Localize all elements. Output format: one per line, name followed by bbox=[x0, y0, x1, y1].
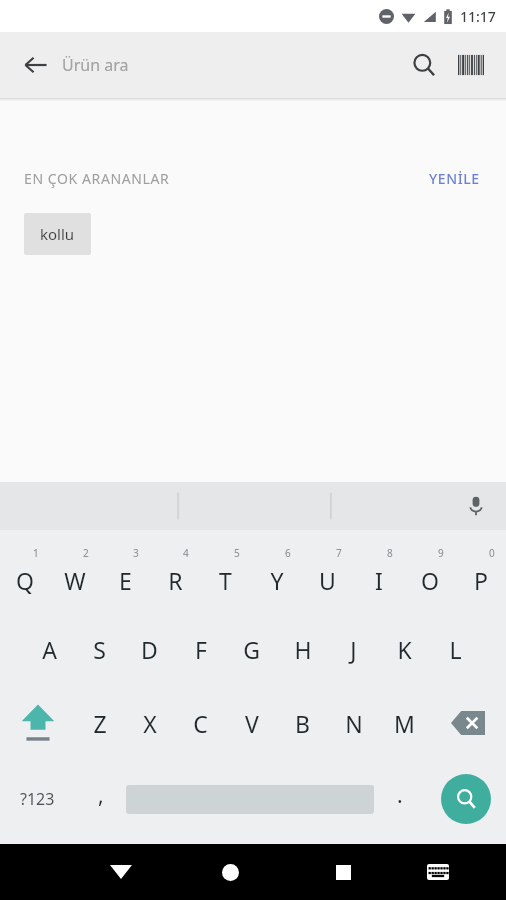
button[interactable]: Search bbox=[400, 41, 448, 89]
button[interactable]: Switch keyboard bbox=[394, 844, 481, 900]
staticText: , bbox=[98, 781, 104, 810]
button[interactable]: B bbox=[277, 686, 328, 760]
staticText: N bbox=[345, 708, 363, 739]
button[interactable]: YENİLE bbox=[423, 165, 486, 192]
staticText: H bbox=[294, 634, 312, 665]
button[interactable]: Ürün ara bbox=[58, 32, 400, 98]
button[interactable]: N bbox=[328, 686, 379, 760]
staticText: 6 bbox=[285, 546, 291, 560]
staticText: X bbox=[143, 708, 157, 739]
staticText: kollu bbox=[40, 224, 75, 244]
staticText: 11:17 bbox=[460, 7, 496, 26]
staticText: . bbox=[397, 781, 403, 810]
staticText: A bbox=[42, 634, 57, 665]
button[interactable]: T bbox=[200, 538, 251, 612]
button[interactable]: kollu bbox=[24, 213, 91, 255]
staticText: YENİLE bbox=[429, 169, 480, 188]
staticText: 7 bbox=[336, 546, 342, 560]
button[interactable]: G bbox=[226, 612, 277, 686]
staticText: EN ÇOK ARANANLAR bbox=[24, 169, 170, 188]
staticText: 9 bbox=[438, 546, 444, 560]
staticText: F bbox=[195, 634, 207, 665]
button[interactable]: L bbox=[430, 612, 481, 686]
button[interactable]: Y bbox=[251, 538, 302, 612]
button[interactable]: Hide keyboard bbox=[73, 844, 168, 900]
button[interactable]: Z bbox=[75, 686, 125, 760]
button[interactable]: E bbox=[100, 538, 150, 612]
staticText: Q bbox=[16, 565, 34, 596]
button[interactable]: Backspace bbox=[430, 686, 506, 760]
button[interactable]: W bbox=[50, 538, 100, 612]
button[interactable]: V bbox=[226, 686, 277, 760]
staticText: Z bbox=[93, 708, 107, 739]
button[interactable]: C bbox=[175, 686, 226, 760]
button[interactable]: Q bbox=[0, 538, 50, 612]
button[interactable]: Space bbox=[126, 760, 374, 838]
staticText: G bbox=[243, 634, 260, 665]
button[interactable]: K bbox=[379, 612, 430, 686]
staticText: 3 bbox=[133, 546, 139, 560]
staticText: D bbox=[141, 634, 158, 665]
staticText: 4 bbox=[183, 546, 189, 560]
staticText: Ürün ara bbox=[62, 54, 129, 76]
button[interactable]: R bbox=[150, 538, 200, 612]
button[interactable]: H bbox=[277, 612, 328, 686]
button[interactable]: . bbox=[374, 760, 425, 838]
button[interactable]: Back bbox=[14, 43, 58, 87]
staticText: M bbox=[394, 708, 415, 739]
button[interactable]: F bbox=[175, 612, 226, 686]
button[interactable]: A bbox=[24, 612, 74, 686]
staticText: S bbox=[93, 634, 106, 665]
staticText: C bbox=[193, 708, 208, 739]
staticText: O bbox=[421, 565, 439, 596]
button[interactable]: , bbox=[75, 760, 126, 838]
staticText: U bbox=[319, 565, 336, 596]
staticText: T bbox=[219, 565, 232, 596]
staticText: W bbox=[64, 565, 86, 596]
button[interactable]: M bbox=[379, 686, 430, 760]
button[interactable]: O bbox=[404, 538, 455, 612]
button[interactable]: Search bbox=[425, 760, 506, 838]
button[interactable]: ?123 bbox=[0, 760, 75, 838]
button[interactable]: X bbox=[125, 686, 175, 760]
staticText: 1 bbox=[33, 546, 39, 560]
button[interactable]: Barcode scanner bbox=[448, 42, 494, 88]
staticText: L bbox=[449, 634, 462, 665]
staticText: P bbox=[474, 565, 488, 596]
staticText: B bbox=[295, 708, 310, 739]
button[interactable]: D bbox=[124, 612, 175, 686]
button[interactable]: J bbox=[328, 612, 379, 686]
staticText: R bbox=[168, 565, 183, 596]
staticText: Y bbox=[270, 565, 284, 596]
button[interactable]: Shift bbox=[0, 686, 75, 760]
staticText: E bbox=[119, 565, 132, 596]
staticText: I bbox=[375, 565, 383, 596]
staticText: V bbox=[245, 708, 259, 739]
button[interactable]: Home bbox=[168, 844, 292, 900]
staticText: 0 bbox=[489, 546, 495, 560]
staticText: 2 bbox=[83, 546, 89, 560]
staticText: 5 bbox=[234, 546, 240, 560]
staticText: 8 bbox=[387, 546, 393, 560]
staticText: ?123 bbox=[20, 788, 55, 810]
staticText: K bbox=[397, 634, 412, 665]
button[interactable]: P bbox=[455, 538, 506, 612]
button[interactable]: Voice input bbox=[454, 484, 498, 528]
button[interactable]: Recent apps bbox=[292, 844, 394, 900]
button[interactable]: U bbox=[302, 538, 353, 612]
button[interactable]: I bbox=[353, 538, 404, 612]
button[interactable]: S bbox=[74, 612, 124, 686]
staticText: J bbox=[350, 634, 357, 665]
